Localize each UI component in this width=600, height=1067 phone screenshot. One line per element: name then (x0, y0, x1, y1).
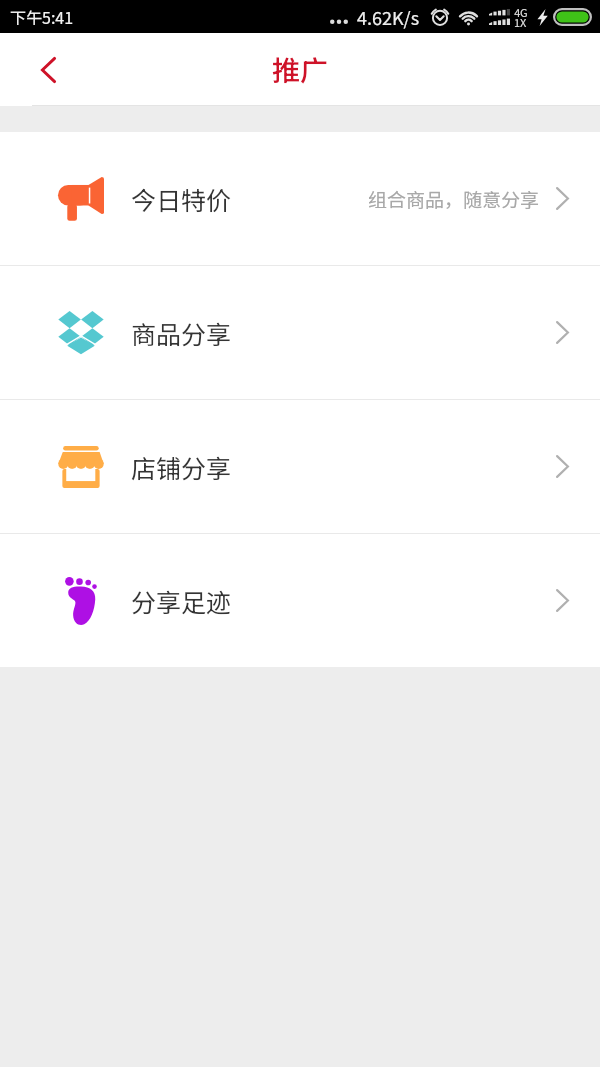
button[interactable]: 今日特价 (0, 132, 600, 265)
staticText: 4.62K/s (357, 4, 420, 30)
button[interactable]: 分享足迹 (0, 534, 600, 667)
button[interactable]: Back (0, 33, 96, 106)
staticText: 今日特价 (131, 181, 232, 217)
staticText: 分享足迹 (131, 583, 232, 619)
staticText: 商品分享 (131, 315, 232, 351)
button[interactable]: 商品分享 (0, 266, 600, 399)
staticText: 1X (514, 14, 527, 30)
staticText: 4G (514, 4, 528, 20)
staticText: 店铺分享 (131, 449, 232, 485)
staticText: 组合商品，随意分享 (368, 185, 540, 213)
staticText: 推广 (272, 49, 329, 90)
staticText: 下午5:41 (10, 5, 74, 28)
button[interactable]: 店铺分享 (0, 400, 600, 533)
